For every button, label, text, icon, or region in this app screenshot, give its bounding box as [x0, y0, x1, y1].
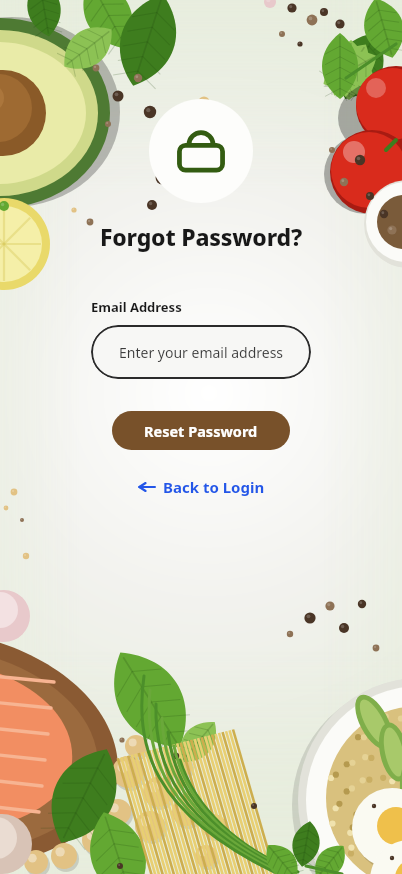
button[interactable]: Back to Login [130, 473, 273, 501]
staticText: Reset Password [144, 421, 258, 441]
staticText: Back to Login [163, 477, 265, 497]
staticText: Email Address [91, 298, 182, 316]
button[interactable]: Enter your email address [91, 325, 311, 379]
staticText: Enter your email address [119, 343, 284, 362]
other: Back to Login [138, 478, 156, 496]
staticText: Forgot Password? [0, 221, 402, 252]
button[interactable]: Reset Password [112, 411, 290, 450]
